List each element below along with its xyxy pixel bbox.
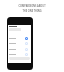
button[interactable] xyxy=(8,42,31,45)
button[interactable] xyxy=(8,53,31,56)
staticText: THE ONE THING xyxy=(22,9,42,12)
button[interactable] xyxy=(8,37,31,40)
staticText: COMPARISONS ABOUT xyxy=(18,4,46,7)
button[interactable] xyxy=(8,48,31,51)
